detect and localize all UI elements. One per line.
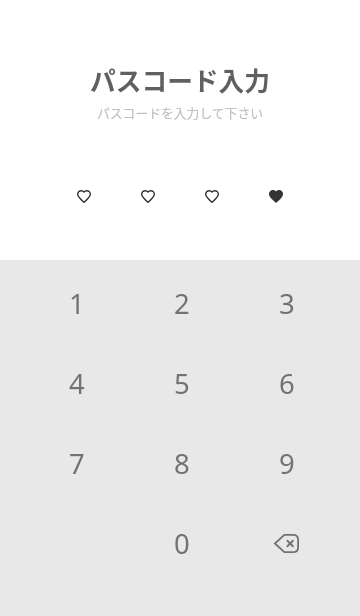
staticText: 1 bbox=[69, 285, 85, 322]
staticText: 7 bbox=[69, 445, 85, 482]
staticText: 0 bbox=[174, 525, 190, 562]
staticText: パスコード入力 bbox=[90, 61, 270, 98]
staticText: 8 bbox=[174, 445, 190, 482]
staticText: 6 bbox=[279, 365, 295, 402]
button[interactable]: 0 bbox=[129, 503, 234, 583]
button[interactable]: 9 bbox=[234, 423, 339, 503]
button[interactable]: 6 bbox=[234, 343, 339, 423]
staticText: 5 bbox=[174, 365, 190, 402]
button[interactable]: Delete bbox=[234, 503, 339, 583]
button[interactable]: 7 bbox=[24, 423, 129, 503]
staticText: パスコードを入力して下さい bbox=[97, 103, 263, 122]
staticText: 2 bbox=[174, 285, 190, 322]
other: Delete bbox=[274, 534, 299, 553]
staticText: 9 bbox=[279, 445, 295, 482]
staticText: 3 bbox=[279, 285, 295, 322]
button[interactable]: 8 bbox=[129, 423, 234, 503]
button[interactable]: 3 bbox=[234, 263, 339, 343]
button[interactable]: 2 bbox=[129, 263, 234, 343]
staticText: 4 bbox=[69, 365, 85, 402]
button[interactable]: 4 bbox=[24, 343, 129, 423]
button[interactable]: 1 bbox=[24, 263, 129, 343]
button[interactable]: 5 bbox=[129, 343, 234, 423]
